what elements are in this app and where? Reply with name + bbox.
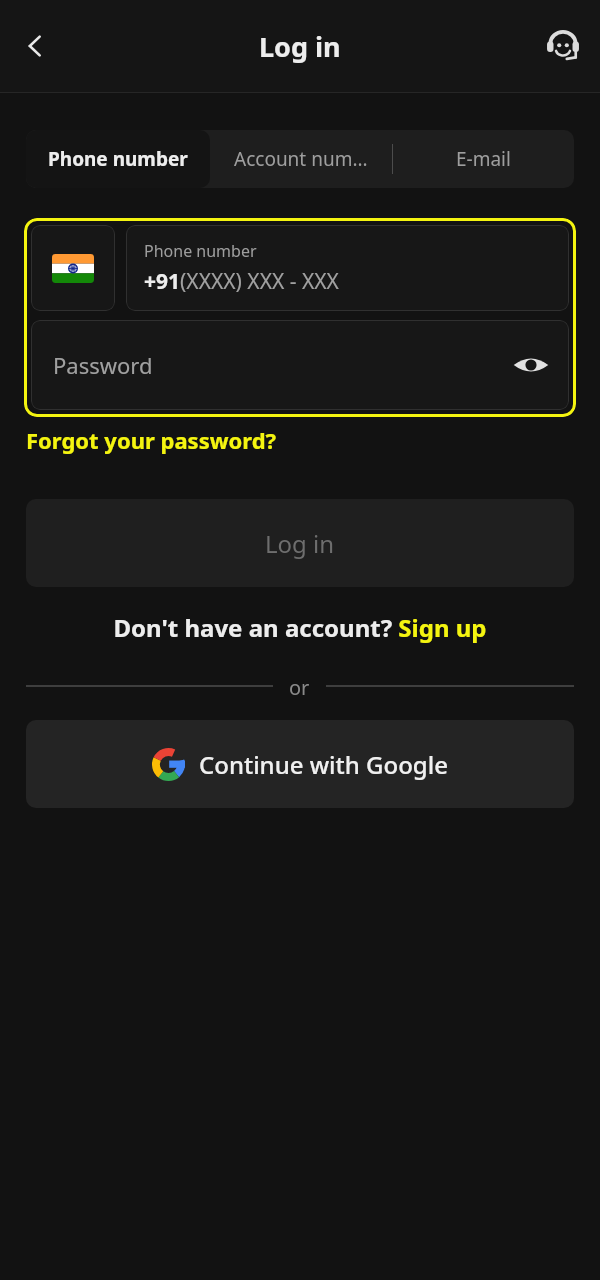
staticText: Phone number <box>48 146 188 172</box>
button[interactable]: Phone number <box>126 225 569 311</box>
button[interactable]: Forgot your password? <box>26 425 277 455</box>
staticText: Log in <box>265 527 335 560</box>
button[interactable]: E-mail <box>393 130 574 188</box>
staticText: or <box>289 674 310 698</box>
button[interactable]: Back <box>6 17 64 75</box>
staticText: Don't have an account? Sign up <box>113 611 487 644</box>
button[interactable]: Account num... <box>210 130 392 188</box>
staticText: Phone number <box>144 240 257 262</box>
button[interactable]: Log in <box>26 499 574 587</box>
button[interactable]: Select country <box>31 225 115 311</box>
staticText: Log in <box>259 28 341 65</box>
staticText: Account num... <box>234 146 368 172</box>
staticText: Forgot your password? <box>26 425 277 455</box>
button[interactable]: Show password <box>507 341 555 389</box>
button[interactable]: Don't have an account? Sign up <box>0 611 600 644</box>
staticText: Password <box>53 350 153 380</box>
staticText: Continue with Google <box>199 748 448 781</box>
button[interactable]: Phone number <box>26 130 210 188</box>
button[interactable]: Continue with Google <box>26 720 574 808</box>
button[interactable]: Customer support <box>534 17 592 75</box>
button[interactable]: Password <box>31 320 569 410</box>
staticText: E-mail <box>456 146 511 172</box>
staticText: +91(XXXX) XXX - XXX <box>144 267 339 296</box>
